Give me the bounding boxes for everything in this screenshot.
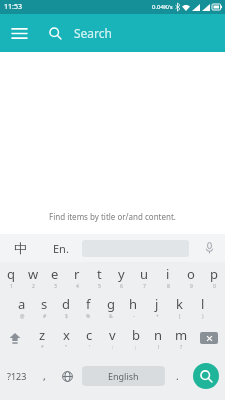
button[interactable]: s xyxy=(33,292,55,322)
button[interactable]: t xyxy=(88,262,110,292)
staticText: En. xyxy=(53,241,69,256)
button[interactable]: e xyxy=(44,262,66,292)
staticText: ? xyxy=(180,344,183,351)
button[interactable]: Backspace xyxy=(193,322,225,354)
staticText: - xyxy=(133,313,135,320)
staticText: q xyxy=(7,265,15,283)
staticText: g xyxy=(107,295,115,313)
staticText: ) xyxy=(202,313,204,320)
staticText: * xyxy=(41,344,44,351)
staticText: ( xyxy=(179,313,181,320)
staticText: a xyxy=(18,295,26,313)
button[interactable]: p xyxy=(202,262,225,292)
staticText: 6 xyxy=(120,283,123,290)
staticText: 3 xyxy=(54,283,57,290)
button[interactable]: q xyxy=(0,262,22,292)
button[interactable]: h xyxy=(122,292,145,322)
button[interactable]: w xyxy=(22,262,44,292)
staticText: k xyxy=(176,295,183,313)
staticText: y xyxy=(118,265,125,283)
button[interactable]: o xyxy=(179,262,202,292)
button[interactable]: y xyxy=(110,262,133,292)
button[interactable]: En. xyxy=(40,234,82,262)
staticText: u xyxy=(140,265,149,283)
staticText: , xyxy=(43,369,46,383)
button[interactable]: v xyxy=(101,322,124,354)
button[interactable]: English xyxy=(82,366,165,386)
staticText: v xyxy=(109,326,116,344)
staticText: 5 xyxy=(98,283,101,290)
button[interactable]: r xyxy=(66,262,88,292)
staticText: English xyxy=(108,370,139,382)
button[interactable]: g xyxy=(99,292,122,322)
staticText: 1 xyxy=(10,283,13,290)
staticText: & xyxy=(109,313,113,320)
button[interactable]: x xyxy=(54,322,78,354)
staticText: " xyxy=(65,344,68,351)
staticText: x xyxy=(63,326,70,344)
button[interactable]: f xyxy=(77,292,99,322)
staticText: ?123 xyxy=(7,370,27,382)
staticText: : xyxy=(112,344,114,351)
staticText: f xyxy=(86,295,91,313)
button[interactable]: b xyxy=(124,322,147,354)
button[interactable]: u xyxy=(133,262,156,292)
staticText: 7 xyxy=(143,283,146,290)
staticText: r xyxy=(74,265,80,283)
staticText: 8 xyxy=(167,283,170,290)
staticText: 4 xyxy=(76,283,79,290)
staticText: l xyxy=(201,295,205,313)
staticText: 11:53 xyxy=(4,2,22,12)
button[interactable]: Search xyxy=(187,354,225,398)
staticText: m xyxy=(175,326,188,344)
button[interactable]: j xyxy=(145,292,168,322)
button[interactable]: Change language xyxy=(54,354,80,398)
staticText: ! xyxy=(158,344,160,351)
staticText: j xyxy=(155,295,159,313)
staticText: b xyxy=(132,326,140,344)
staticText: @ xyxy=(20,313,25,320)
staticText: Find items by title or/and content. xyxy=(49,211,176,222)
staticText: ' xyxy=(89,344,91,351)
staticText: h xyxy=(129,295,138,313)
staticText: % xyxy=(86,313,91,320)
staticText: ; xyxy=(135,344,137,351)
staticText: 9 xyxy=(190,283,193,290)
button[interactable]: Search xyxy=(38,16,72,50)
staticText: s xyxy=(41,295,48,313)
staticText: t xyxy=(97,265,102,283)
staticText: d xyxy=(62,295,70,313)
button[interactable]: i xyxy=(156,262,179,292)
button[interactable]: c xyxy=(78,322,101,354)
staticText: 0 xyxy=(213,283,216,290)
staticText: c xyxy=(86,326,93,344)
button[interactable]: z xyxy=(30,322,54,354)
staticText: . xyxy=(176,369,179,383)
button[interactable]: Shift xyxy=(0,322,30,354)
button[interactable]: a xyxy=(11,292,33,322)
button[interactable]: n xyxy=(147,322,170,354)
button[interactable]: m xyxy=(170,322,193,354)
button[interactable]: 中 xyxy=(0,234,40,262)
staticText: # xyxy=(43,313,47,320)
button[interactable]: Voice input xyxy=(193,234,225,262)
staticText: p xyxy=(210,265,218,283)
button[interactable]: . xyxy=(167,354,187,398)
staticText: 0.04K/s xyxy=(152,3,173,11)
staticText: z xyxy=(39,326,46,344)
staticText: w xyxy=(28,265,39,283)
staticText: i xyxy=(166,265,170,283)
staticText: $ xyxy=(65,313,68,320)
staticText: n xyxy=(154,326,163,344)
staticText: o xyxy=(187,265,195,283)
staticText: 中 xyxy=(14,240,27,256)
button[interactable]: l xyxy=(191,292,214,322)
button[interactable]: , xyxy=(34,354,54,398)
button[interactable]: Search xyxy=(74,25,112,41)
button[interactable]: ?123 xyxy=(0,354,34,398)
button[interactable]: Open navigation menu xyxy=(0,14,38,52)
button[interactable]: d xyxy=(55,292,77,322)
staticText: e xyxy=(51,265,59,283)
button[interactable]: k xyxy=(168,292,191,322)
